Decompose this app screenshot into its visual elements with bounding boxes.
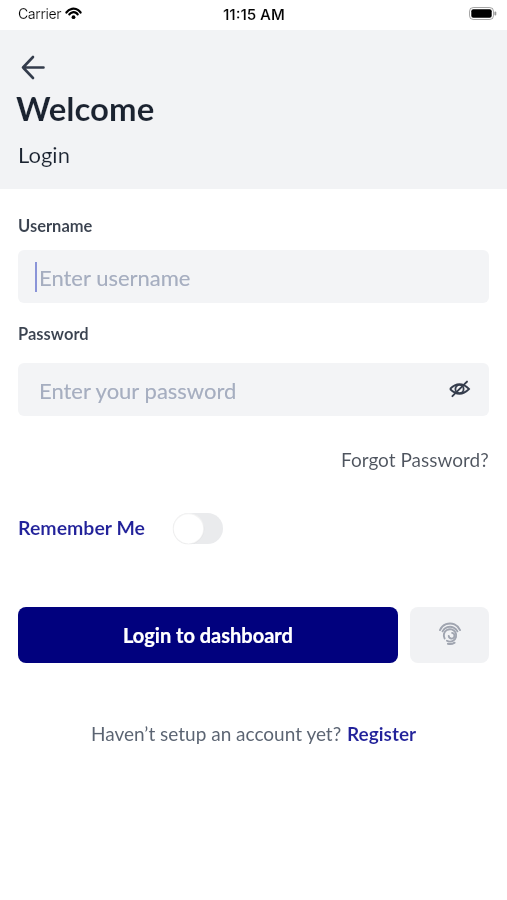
button[interactable]: Enter your password	[18, 363, 489, 416]
staticText: Haven’t setup an account yet?	[91, 722, 347, 745]
staticText: 11:15 AM	[223, 5, 285, 23]
button[interactable]: Forgot Password?	[341, 448, 489, 471]
staticText: Carrier	[18, 5, 62, 22]
button[interactable]	[14, 48, 52, 86]
button[interactable]: Enter username	[18, 250, 489, 303]
button[interactable]: Login to dashboard	[18, 607, 398, 663]
staticText: Enter username	[39, 264, 191, 290]
staticText: Password	[18, 324, 89, 344]
staticText: Login	[18, 141, 70, 167]
staticText: Login to dashboard	[123, 623, 293, 647]
staticText: Register	[347, 722, 417, 745]
staticText: Enter your password	[39, 377, 237, 403]
staticText: Welcome	[16, 88, 155, 128]
button[interactable]	[410, 607, 489, 663]
button[interactable]: Register	[347, 722, 417, 745]
button[interactable]	[173, 513, 223, 544]
button[interactable]	[441, 371, 477, 407]
staticText: Remember Me	[18, 516, 145, 539]
staticText: Forgot Password?	[341, 448, 489, 471]
staticText: Username	[18, 216, 93, 236]
